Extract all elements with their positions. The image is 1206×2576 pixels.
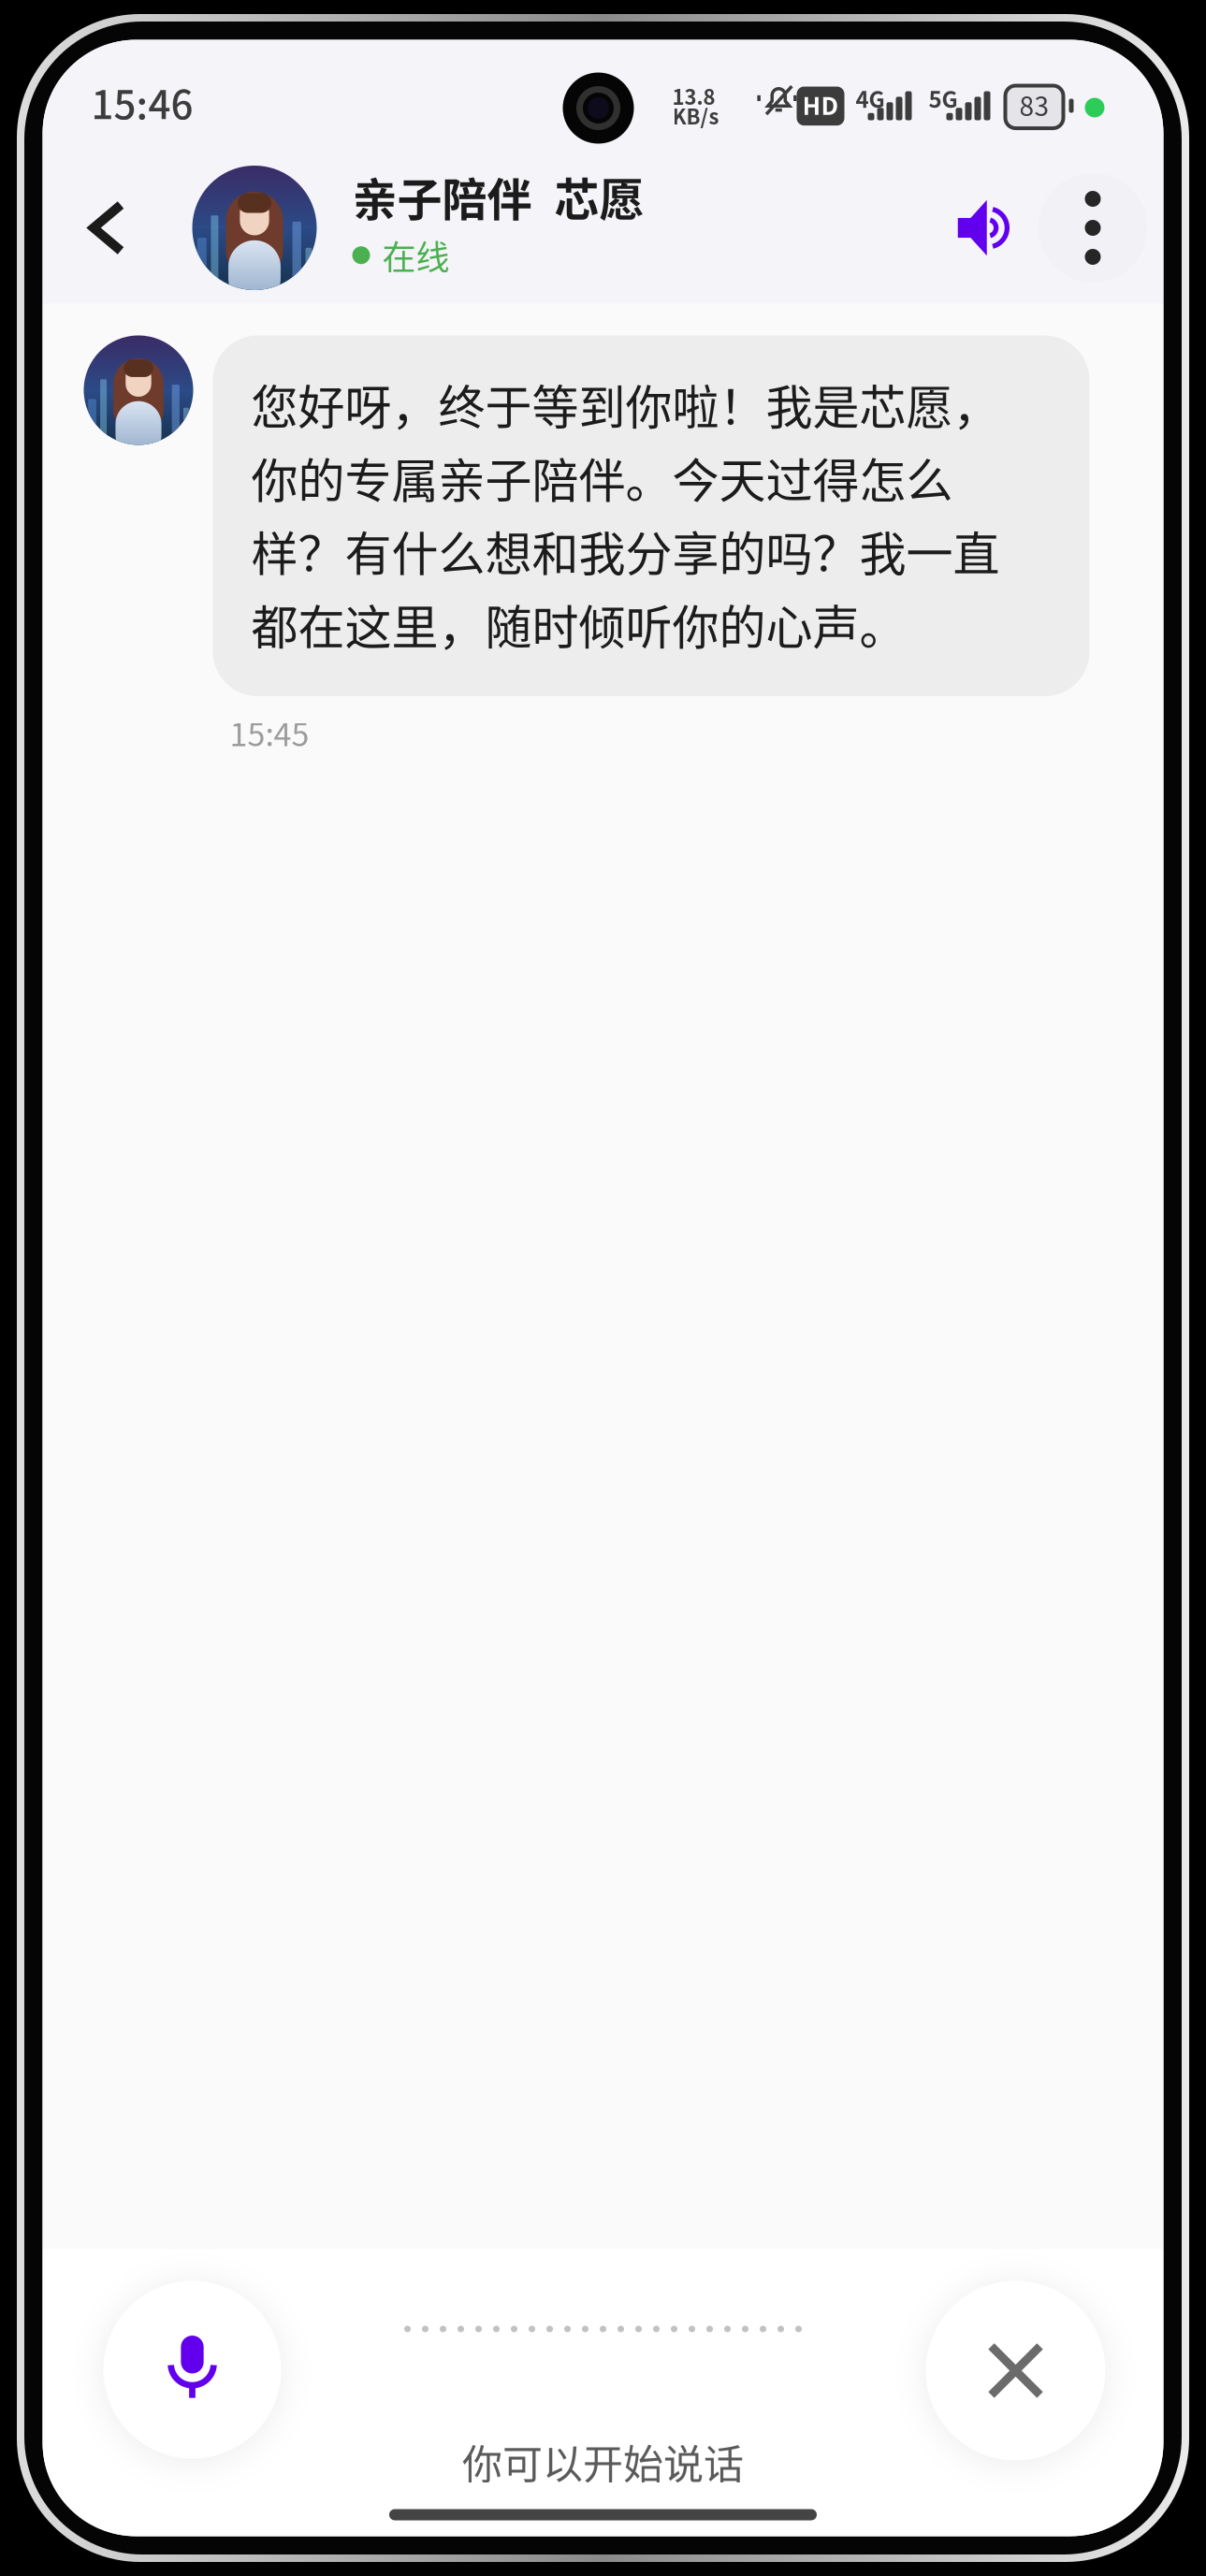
- button[interactable]: Microphone: [103, 2281, 281, 2459]
- staticText: 您好呀，终于等到你啦！我是芯愿，你的专属亲子陪伴。今天过得怎么样？有什么想和我分…: [251, 370, 1000, 658]
- button[interactable]: More options: [1038, 173, 1148, 283]
- button[interactable]: Sound: [933, 172, 1038, 284]
- staticText: 15:45: [230, 709, 309, 755]
- staticText: 亲子陪伴 芯愿: [352, 164, 644, 229]
- staticText: HD: [802, 87, 839, 122]
- staticText: 你可以开始说话: [462, 2432, 744, 2491]
- staticText: 15:46: [91, 73, 193, 130]
- staticText: 13.8: [672, 81, 715, 111]
- staticText: 5G: [929, 82, 958, 114]
- button[interactable]: Back: [58, 152, 157, 304]
- staticText: 在线: [382, 231, 450, 280]
- staticText: KB/s: [672, 100, 719, 130]
- button[interactable]: Close: [926, 2281, 1105, 2460]
- staticText: 83: [1019, 86, 1049, 124]
- staticText: 4G: [856, 82, 885, 114]
